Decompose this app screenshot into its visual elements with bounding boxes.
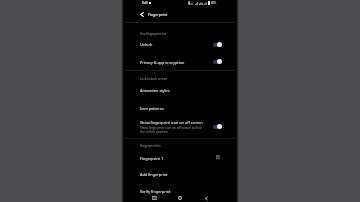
staticText: Verify fingerprint bbox=[140, 189, 171, 194]
button[interactable]: Toggle on bbox=[213, 59, 222, 64]
button[interactable]: Recent apps bbox=[149, 193, 159, 202]
button[interactable]: Back bbox=[138, 10, 146, 18]
staticText: Fingerprint 1 bbox=[140, 156, 164, 161]
staticText: Add fingerprint bbox=[140, 172, 168, 177]
staticText: Privacy & app encryption bbox=[140, 60, 185, 65]
button[interactable]: Add fingerprint bbox=[122, 168, 237, 180]
staticText: 80% bbox=[211, 1, 217, 5]
button[interactable]: Back bbox=[201, 193, 211, 202]
staticText: Show fingerprint icon on off screen bbox=[140, 120, 203, 125]
button[interactable]: Animation styles bbox=[122, 84, 237, 96]
button[interactable]: Unlock bbox=[122, 38, 237, 50]
button[interactable]: Verify fingerprint bbox=[122, 185, 237, 197]
button[interactable]: Icon patterns bbox=[122, 102, 237, 114]
button[interactable]: Toggle on bbox=[213, 124, 222, 129]
staticText: Lock/unlock screen bbox=[140, 77, 167, 81]
staticText: Use fingerprint for bbox=[140, 32, 167, 36]
staticText: Show fingerprint icon on off screen to f… bbox=[140, 126, 202, 134]
button[interactable]: Delete fingerprint bbox=[215, 154, 221, 160]
staticText: 8:46 bbox=[142, 1, 148, 5]
staticText: Fingerprint bbox=[148, 12, 168, 17]
button[interactable]: Home bbox=[175, 193, 185, 202]
button[interactable]: Toggle on bbox=[213, 42, 222, 47]
staticText: Unlock bbox=[140, 42, 153, 47]
button[interactable]: Fingerprint 1 bbox=[122, 152, 237, 164]
staticText: Animation styles bbox=[140, 88, 170, 93]
staticText: Fingerprint list bbox=[140, 144, 161, 148]
button[interactable]: Privacy & app encryption bbox=[122, 56, 237, 68]
staticText: Icon patterns bbox=[140, 106, 164, 111]
button[interactable]: Show fingerprint icon on off screen bbox=[122, 116, 237, 128]
